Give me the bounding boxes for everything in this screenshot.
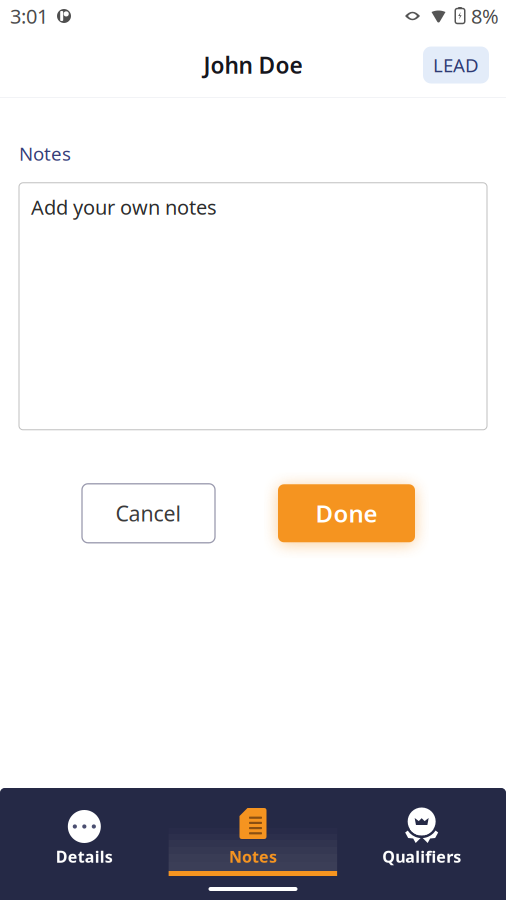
staticText: Done bbox=[315, 497, 377, 529]
staticText: John Doe bbox=[203, 50, 302, 80]
button[interactable]: Notes bbox=[169, 788, 337, 876]
staticText: 3:01 bbox=[10, 3, 48, 29]
staticText: Qualifiers bbox=[382, 846, 461, 867]
staticText: Notes bbox=[229, 846, 277, 867]
button[interactable]: Cancel bbox=[82, 484, 215, 543]
button[interactable]: Done bbox=[278, 484, 415, 542]
button[interactable]: Qualifiers bbox=[337, 788, 506, 876]
button[interactable]: Details bbox=[0, 788, 169, 876]
staticText: LEAD bbox=[433, 53, 479, 77]
staticText: 8% bbox=[471, 3, 499, 29]
staticText: Cancel bbox=[115, 499, 181, 527]
staticText: Add your own notes bbox=[31, 194, 217, 220]
button[interactable]: LEAD bbox=[423, 46, 489, 83]
staticText: Notes bbox=[19, 141, 71, 166]
staticText: Details bbox=[56, 846, 113, 867]
